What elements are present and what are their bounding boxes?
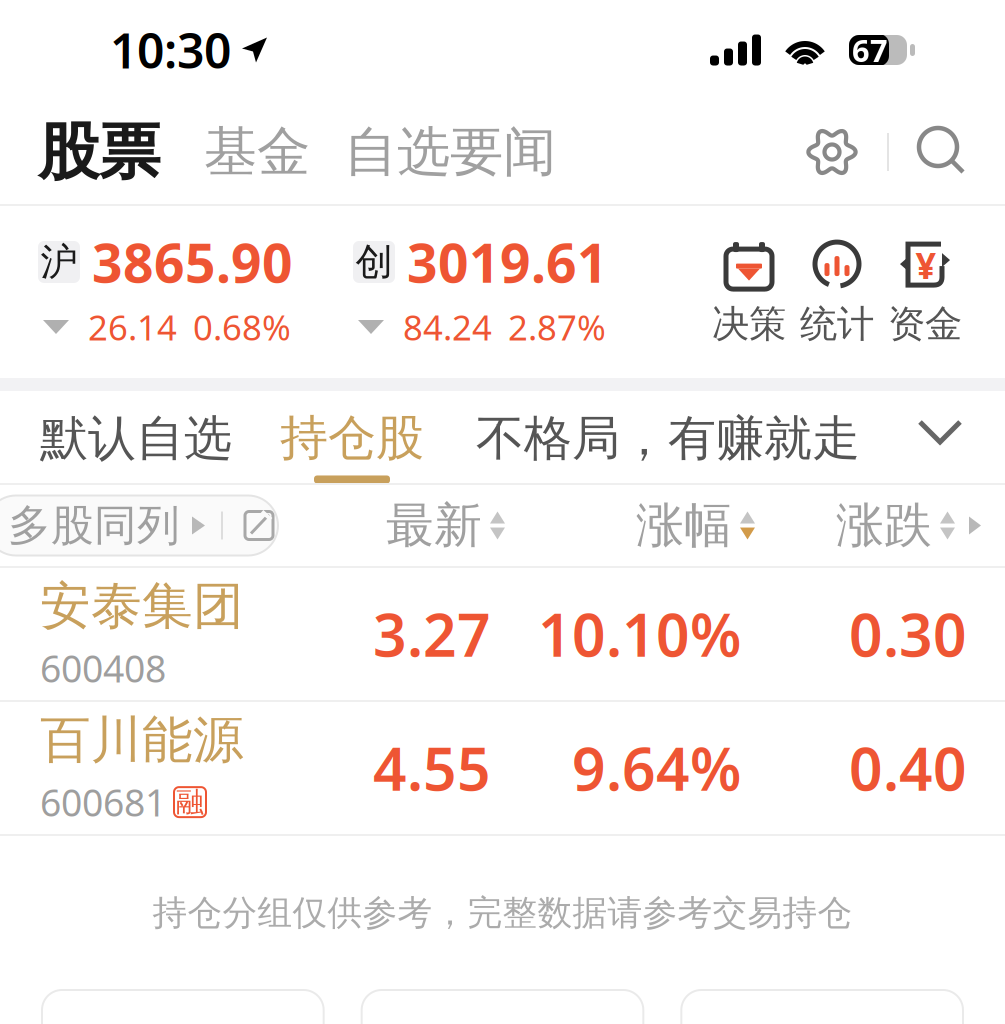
staticText: 600408	[40, 643, 166, 693]
staticText: 4.55	[373, 729, 491, 807]
staticText: 自选要闻	[344, 119, 556, 185]
staticText: 0.30	[849, 595, 967, 673]
button[interactable]: 基金	[184, 100, 330, 204]
staticText: 10:30	[110, 18, 231, 82]
staticText: 涨幅	[636, 496, 732, 555]
staticText: 10.10%	[538, 595, 741, 673]
staticText: 不格局，有赚就走	[476, 409, 860, 468]
button[interactable]: 安泰集团	[0, 568, 1005, 700]
button[interactable]: 不格局，有赚就走	[424, 391, 860, 468]
staticText: 67	[852, 30, 888, 70]
button[interactable]: ¥	[881, 237, 969, 347]
staticText: 26.14	[88, 304, 177, 350]
staticText: 资金	[888, 301, 962, 347]
button[interactable]: 股票	[0, 100, 184, 204]
staticText: 3.27	[373, 595, 491, 673]
staticText: 股票	[38, 114, 160, 190]
button[interactable]: 涨跌	[836, 496, 955, 555]
staticText: 百川能源	[40, 709, 244, 771]
staticText: 默认自选	[40, 409, 232, 468]
staticText: 0.68%	[193, 304, 291, 350]
button[interactable]: 涨幅	[636, 496, 755, 555]
button[interactable]: 自选要闻	[330, 100, 570, 204]
staticText: 最新	[386, 496, 482, 555]
button[interactable]: 最新	[386, 496, 505, 555]
button[interactable]: 沪	[38, 234, 293, 350]
staticText: 基金	[204, 119, 310, 185]
staticText: 融	[176, 785, 204, 819]
button[interactable]: 百川能源	[0, 702, 1005, 834]
staticText: ¥	[915, 241, 936, 289]
staticText: 9.64%	[572, 729, 741, 807]
staticText: 统计	[800, 301, 874, 347]
staticText: 沪	[40, 239, 77, 285]
button[interactable]: 多股同列	[0, 495, 292, 555]
staticText: 创	[355, 239, 392, 285]
button[interactable]: 统计	[793, 237, 881, 347]
staticText: 决策	[712, 301, 786, 347]
button[interactable]: 默认自选	[0, 391, 232, 468]
button[interactable]: 创	[353, 234, 608, 350]
staticText: 0.40	[849, 729, 967, 807]
staticText: 持仓分组仅供参考，完整数据请参考交易持仓	[152, 892, 852, 934]
button[interactable]: 决策	[705, 237, 793, 347]
staticText: 安泰集团	[40, 575, 244, 637]
button[interactable]: Expand groups	[917, 391, 1005, 447]
staticText: 持仓股	[280, 408, 424, 467]
button[interactable]: Search	[913, 100, 971, 204]
staticText: 84.24	[403, 304, 492, 350]
staticText: 多股同列	[8, 499, 180, 552]
staticText: 涨跌	[836, 496, 932, 555]
button[interactable]: 持仓股	[232, 391, 424, 483]
staticText: 2.87%	[508, 304, 606, 350]
staticText: 3865.90	[92, 227, 293, 297]
staticText: 3019.61	[407, 227, 608, 297]
button[interactable]: Settings	[801, 100, 863, 204]
staticText: 600681	[40, 777, 166, 827]
